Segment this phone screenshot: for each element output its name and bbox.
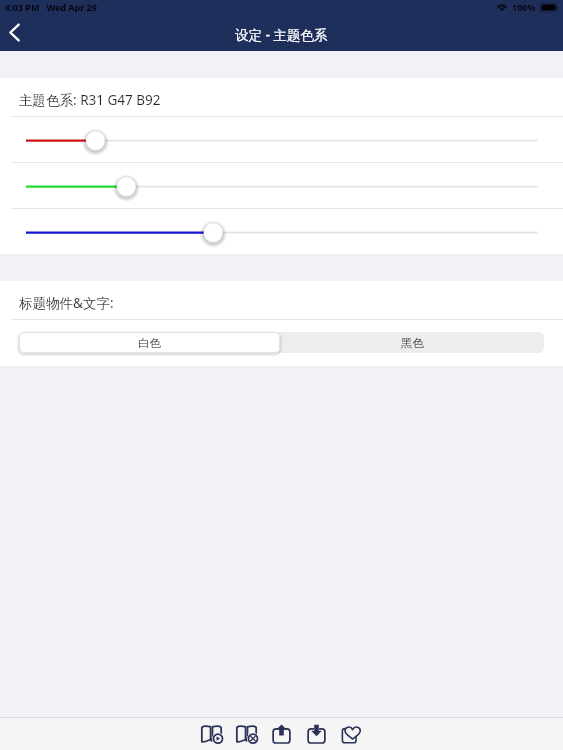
- staticText: 设定 - 主题色系: [235, 26, 328, 44]
- button[interactable]: Read aloud: [194, 718, 229, 750]
- button[interactable]: [0, 163, 563, 209]
- staticText: 主題色系: R31 G47 B92: [19, 91, 161, 109]
- button[interactable]: Back: [0, 16, 38, 50]
- button[interactable]: 白色: [19, 332, 280, 353]
- staticText: 100%: [512, 1, 536, 13]
- staticText: 白色: [138, 336, 161, 350]
- button[interactable]: [0, 209, 563, 255]
- button[interactable]: 黑色: [280, 332, 544, 353]
- staticText: 8:03 PM Wed Apr 29: [5, 1, 97, 13]
- staticText: 标题物件&文字:: [19, 294, 114, 312]
- button[interactable]: [0, 117, 563, 163]
- button[interactable]: Favorite: [334, 718, 369, 750]
- button[interactable]: Stop reading: [229, 718, 264, 750]
- staticText: 黑色: [401, 336, 424, 350]
- button[interactable]: Share: [264, 718, 299, 750]
- button[interactable]: Download: [299, 718, 334, 750]
